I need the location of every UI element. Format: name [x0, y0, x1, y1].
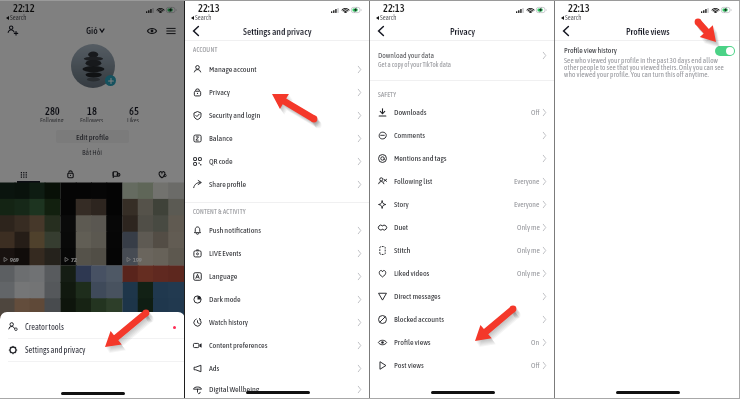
staticText: Profile views: [626, 26, 670, 37]
button[interactable]: Video: [0, 266, 60, 348]
staticText: Edit profile: [76, 132, 109, 141]
button[interactable]: Watch history: [185, 311, 370, 334]
button[interactable]: Video: [61, 266, 122, 348]
staticText: 280: [45, 105, 60, 117]
staticText: Settings and privacy: [243, 26, 312, 37]
staticText: Stitch: [394, 246, 411, 255]
staticText: Story: [394, 200, 409, 209]
staticText: Likes: [127, 117, 140, 122]
staticText: Bắt Hổi: [82, 148, 103, 157]
button[interactable]: Profile views: [370, 331, 555, 354]
button[interactable]: Creator tools: [0, 316, 185, 338]
button[interactable]: Dark mode: [185, 288, 370, 311]
staticText: 969: [10, 256, 19, 263]
button[interactable]: Language: [185, 265, 370, 288]
staticText: Get a copy of your TikTok data: [378, 61, 452, 69]
button[interactable]: Duet: [370, 216, 555, 239]
staticText: Digital Wellbeing: [209, 385, 260, 394]
staticText: Profile view history: [564, 46, 617, 55]
button[interactable]: Ads: [185, 357, 370, 380]
staticText: 65: [129, 105, 139, 117]
button[interactable]: Profile view history: [555, 41, 740, 60]
staticText: 18: [87, 105, 97, 117]
button[interactable]: Stitch: [370, 239, 555, 262]
button[interactable]: Liked: [139, 169, 185, 180]
staticText: Creator tools: [25, 322, 64, 332]
staticText: Profile views: [394, 338, 431, 347]
staticText: Followers: [80, 117, 104, 122]
button[interactable]: LIVE Events: [185, 242, 370, 265]
button[interactable]: Direct messages: [370, 285, 555, 308]
button[interactable]: Settings and privacy: [0, 339, 185, 361]
button[interactable]: Add friends: [7, 25, 18, 36]
button[interactable]: Following list: [370, 170, 555, 193]
button[interactable]: Story: [370, 193, 555, 216]
button[interactable]: Gió: [86, 25, 104, 36]
staticText: Off: [531, 108, 540, 117]
button[interactable]: Profile views: [147, 26, 157, 36]
button[interactable]: Back: [189, 24, 203, 38]
button[interactable]: Add: [105, 75, 116, 86]
staticText: Following list: [394, 177, 433, 186]
staticText: Security and login: [209, 111, 261, 120]
button[interactable]: Balance: [185, 127, 370, 150]
staticText: Following: [40, 117, 64, 122]
button[interactable]: Menu: [166, 26, 176, 36]
staticText: Share profile: [209, 180, 247, 189]
staticText: Search: [195, 14, 212, 22]
staticText: Everyone: [514, 177, 540, 186]
button[interactable]: Content preferences: [185, 334, 370, 357]
button[interactable]: Comments: [370, 124, 555, 147]
staticText: Blocked accounts: [394, 315, 444, 324]
staticText: Privacy: [209, 88, 231, 97]
button[interactable]: Back: [559, 24, 573, 38]
button[interactable]: Liked videos: [370, 262, 555, 285]
button[interactable]: Toggle profile view history: [715, 46, 735, 56]
staticText: Privacy: [450, 26, 476, 37]
button[interactable]: Edit profile: [56, 130, 129, 143]
button[interactable]: Private: [47, 169, 93, 180]
staticText: Direct messages: [394, 292, 441, 301]
staticText: 199: [133, 256, 142, 263]
staticText: Content preferences: [209, 341, 268, 350]
staticText: Comments: [394, 131, 426, 140]
button[interactable]: Videos: [0, 169, 47, 180]
staticText: Duet: [394, 223, 409, 232]
staticText: QR code: [209, 157, 233, 166]
button[interactable]: Digital Wellbeing: [185, 380, 370, 399]
staticText: Search: [380, 14, 397, 22]
staticText: Dark mode: [209, 295, 241, 304]
button[interactable]: Back: [374, 24, 388, 38]
button[interactable]: Security and login: [185, 104, 370, 127]
staticText: On: [531, 338, 540, 347]
button[interactable]: Video 199 views: [123, 183, 184, 265]
staticText: 22:13: [198, 2, 220, 14]
staticText: Gió: [86, 25, 98, 36]
button[interactable]: Reposts: [93, 169, 139, 180]
staticText: 72: [71, 256, 77, 263]
button[interactable]: Blocked accounts: [370, 308, 555, 331]
staticText: 22:13: [383, 2, 405, 14]
staticText: Language: [209, 272, 238, 281]
button[interactable]: Video: [123, 266, 184, 348]
staticText: Balance: [209, 134, 233, 143]
staticText: Settings and privacy: [25, 345, 86, 355]
button[interactable]: Download your data: [370, 41, 555, 80]
button[interactable]: Post views: [370, 354, 555, 377]
button[interactable]: QR code: [185, 150, 370, 173]
staticText: Post views: [394, 361, 424, 370]
staticText: 22:13: [568, 2, 590, 14]
button[interactable]: Video 969 views: [0, 183, 60, 265]
staticText: Everyone: [514, 200, 540, 209]
button[interactable]: Push notifications: [185, 219, 370, 242]
staticText: CONTENT & ACTIVITY: [193, 208, 246, 215]
button[interactable]: Downloads: [370, 101, 555, 124]
button[interactable]: Video 72 views: [61, 183, 122, 265]
staticText: Only me: [517, 246, 540, 255]
button[interactable]: Manage account: [185, 58, 370, 81]
button[interactable]: Mentions and tags: [370, 147, 555, 170]
staticText: Download your data: [378, 51, 435, 60]
staticText: SAFETY: [378, 91, 397, 98]
button[interactable]: Share profile: [185, 173, 370, 196]
button[interactable]: Privacy: [185, 81, 370, 104]
